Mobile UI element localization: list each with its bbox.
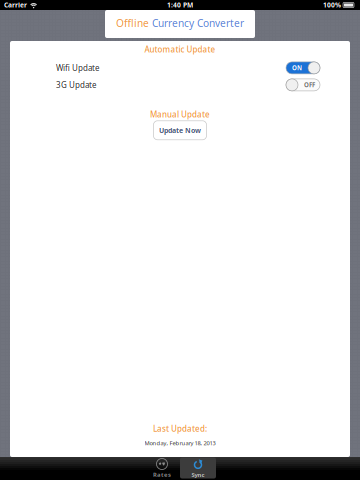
button[interactable]: Wifi Update On [286, 62, 320, 74]
staticText: 1:40 PM [167, 0, 193, 10]
staticText: Automatic Update [144, 44, 215, 55]
staticText: 3G Update [56, 79, 97, 90]
staticText: Rates [153, 470, 171, 478]
staticText: ON [292, 64, 302, 72]
button[interactable]: Update Now [153, 121, 206, 140]
button[interactable]: Rates [144, 457, 180, 480]
staticText: Last Updated: [153, 423, 207, 434]
staticText: Carrier [4, 0, 27, 10]
staticText: Sync [191, 471, 204, 479]
staticText: Update Now [159, 126, 201, 135]
staticText: Currency Converter [152, 16, 244, 30]
staticText: Manual Update [150, 109, 210, 120]
staticText: 100% [323, 0, 341, 10]
staticText: Offline [116, 16, 149, 30]
staticText: Wifi Update [56, 62, 100, 73]
button[interactable]: Sync [180, 456, 216, 480]
staticText: Monday, February 18, 2013 [144, 439, 215, 447]
button[interactable]: 3G Update Off [286, 79, 320, 91]
staticText: OFF [304, 81, 315, 89]
